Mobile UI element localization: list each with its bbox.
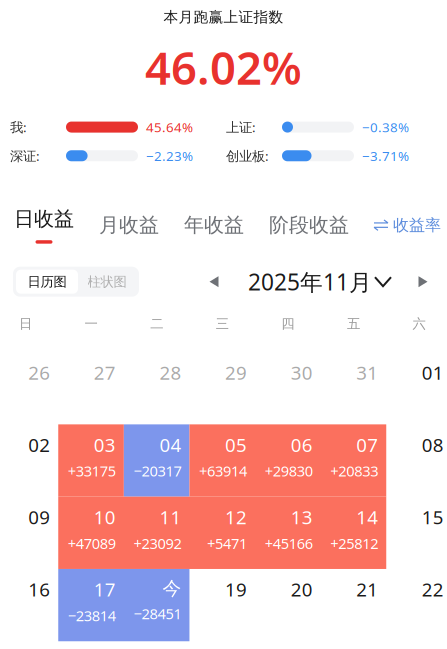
staticText: −3.71% bbox=[362, 147, 409, 165]
staticText: 13 bbox=[291, 505, 313, 529]
button[interactable]: 30 bbox=[255, 352, 321, 424]
button[interactable]: 16 bbox=[0, 569, 58, 641]
button[interactable]: Previous month bbox=[203, 269, 225, 295]
button[interactable]: 04 bbox=[124, 424, 189, 497]
staticText: 日 bbox=[19, 316, 32, 332]
staticText: 五 bbox=[347, 316, 360, 332]
staticText: 46.02% bbox=[145, 37, 302, 97]
staticText: 45.64% bbox=[146, 118, 193, 136]
staticText: 今 bbox=[162, 577, 181, 600]
staticText: 收益率 bbox=[393, 215, 441, 235]
staticText: 15 bbox=[422, 505, 444, 529]
staticText: 28 bbox=[159, 360, 181, 385]
staticText: 30 bbox=[291, 360, 313, 385]
staticText: +25812 bbox=[330, 533, 378, 553]
staticText: 本月跑赢上证指数 bbox=[163, 8, 283, 26]
button[interactable]: 收益率 bbox=[374, 215, 441, 235]
button[interactable]: 今 bbox=[124, 569, 189, 641]
button[interactable]: 08 bbox=[386, 424, 447, 497]
staticText: +20833 bbox=[330, 461, 378, 481]
staticText: 06 bbox=[291, 432, 313, 457]
staticText: +47089 bbox=[68, 533, 116, 553]
staticText: 六 bbox=[413, 316, 426, 332]
staticText: 2025年11月 bbox=[248, 267, 372, 297]
button[interactable]: 03 bbox=[58, 424, 124, 497]
button[interactable]: 28 bbox=[124, 352, 189, 424]
staticText: 21 bbox=[356, 577, 378, 602]
button[interactable]: Next month bbox=[408, 269, 438, 295]
button[interactable]: 01 bbox=[386, 352, 447, 424]
button[interactable]: 日收益 bbox=[14, 207, 74, 244]
staticText: 12 bbox=[225, 505, 247, 529]
staticText: 月收益 bbox=[99, 213, 159, 237]
button[interactable]: 02 bbox=[0, 424, 58, 497]
button[interactable]: 07 bbox=[321, 424, 386, 497]
staticText: 31 bbox=[356, 360, 378, 385]
staticText: 创业板: bbox=[226, 147, 269, 165]
button[interactable]: 15 bbox=[386, 497, 447, 569]
staticText: 阶段收益 bbox=[269, 213, 349, 237]
staticText: 29 bbox=[225, 360, 247, 385]
button[interactable]: 29 bbox=[189, 352, 255, 424]
button[interactable]: 年收益 bbox=[184, 213, 244, 237]
button[interactable]: 31 bbox=[321, 352, 386, 424]
staticText: 一 bbox=[84, 316, 97, 332]
staticText: 上证: bbox=[226, 118, 256, 136]
staticText: 柱状图 bbox=[87, 273, 126, 290]
staticText: +45166 bbox=[265, 533, 313, 553]
button[interactable]: 26 bbox=[0, 352, 58, 424]
button[interactable]: 06 bbox=[255, 424, 321, 497]
staticText: −23814 bbox=[68, 606, 116, 625]
button[interactable]: 日历图 bbox=[16, 270, 78, 294]
button[interactable]: 21 bbox=[321, 569, 386, 641]
button[interactable]: 10 bbox=[58, 497, 124, 569]
button[interactable]: 12 bbox=[189, 497, 255, 569]
button[interactable]: 09 bbox=[0, 497, 58, 569]
staticText: 26 bbox=[28, 360, 50, 385]
button[interactable]: 14 bbox=[321, 497, 386, 569]
staticText: 07 bbox=[356, 432, 378, 457]
staticText: 三 bbox=[216, 316, 229, 332]
staticText: 05 bbox=[225, 432, 247, 457]
button[interactable]: 20 bbox=[255, 569, 321, 641]
staticText: 01 bbox=[422, 360, 444, 385]
staticText: −2.23% bbox=[146, 147, 193, 165]
button[interactable]: 22 bbox=[386, 569, 447, 641]
button[interactable]: 17 bbox=[58, 569, 124, 641]
button[interactable]: 11 bbox=[124, 497, 189, 569]
staticText: 17 bbox=[94, 577, 116, 602]
button[interactable]: 2025年11月 bbox=[225, 269, 408, 295]
staticText: 20 bbox=[291, 577, 313, 602]
staticText: +23092 bbox=[133, 533, 181, 553]
button[interactable]: 13 bbox=[255, 497, 321, 569]
button[interactable]: 19 bbox=[189, 569, 255, 641]
staticText: 二 bbox=[150, 316, 163, 332]
staticText: 08 bbox=[422, 432, 444, 457]
staticText: +29830 bbox=[265, 461, 313, 481]
staticText: −20317 bbox=[133, 461, 181, 481]
button[interactable]: 阶段收益 bbox=[269, 213, 349, 237]
staticText: −28451 bbox=[133, 604, 181, 623]
staticText: 我: bbox=[10, 118, 27, 136]
staticText: +33175 bbox=[68, 461, 116, 481]
button[interactable]: 27 bbox=[58, 352, 124, 424]
button[interactable]: 月收益 bbox=[99, 213, 159, 237]
staticText: 11 bbox=[159, 505, 181, 529]
staticText: 16 bbox=[28, 577, 50, 602]
staticText: 03 bbox=[94, 432, 116, 457]
staticText: 年收益 bbox=[184, 213, 244, 237]
staticText: −0.38% bbox=[362, 118, 409, 136]
staticText: 09 bbox=[28, 505, 50, 529]
staticText: 四 bbox=[281, 316, 294, 332]
staticText: 日收益 bbox=[14, 207, 74, 231]
staticText: 14 bbox=[356, 505, 378, 529]
staticText: 10 bbox=[94, 505, 116, 529]
staticText: 04 bbox=[159, 432, 181, 457]
staticText: +63914 bbox=[199, 461, 247, 481]
staticText: 深证: bbox=[10, 147, 40, 165]
button[interactable]: 05 bbox=[189, 424, 255, 497]
staticText: 22 bbox=[422, 577, 444, 602]
staticText: 19 bbox=[225, 577, 247, 602]
staticText: 27 bbox=[94, 360, 116, 385]
button[interactable]: 柱状图 bbox=[78, 270, 136, 294]
